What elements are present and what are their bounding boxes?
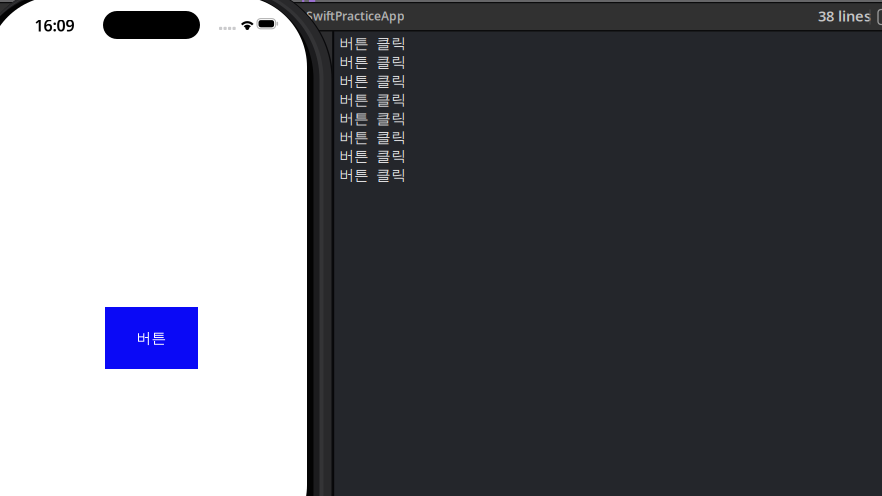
staticText: 38 lines [818, 6, 871, 25]
staticText: 버튼 [136, 329, 166, 347]
button[interactable]: 버튼 [105, 307, 198, 369]
staticText: 16:09 [34, 15, 74, 36]
staticText: 버튼 클릭 [339, 128, 406, 146]
staticText: SwiftPracticeApp [306, 8, 405, 24]
staticText: 버튼 클릭 [339, 72, 406, 90]
staticText: 버튼 클릭 [339, 91, 406, 109]
staticText: 버튼 클릭 [339, 53, 406, 71]
staticText: 버튼 클릭 [339, 110, 406, 128]
staticText: 버튼 클릭 [339, 34, 406, 52]
staticText: 버튼 클릭 [339, 147, 406, 165]
staticText: 버튼 클릭 [339, 166, 406, 184]
